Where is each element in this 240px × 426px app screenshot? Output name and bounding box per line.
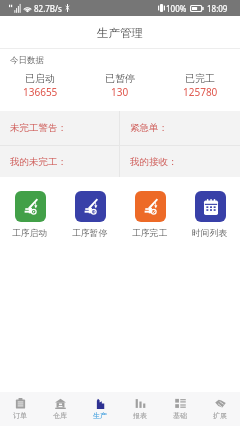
staticText: 扩展 <box>213 411 227 420</box>
staticText: 基础 <box>173 411 187 420</box>
other: 基础 <box>175 398 186 409</box>
button[interactable]: 基础 <box>160 392 200 426</box>
button[interactable]: 我的未完工： <box>0 146 119 177</box>
staticText: 订单 <box>13 411 27 420</box>
button[interactable]: 仓库 <box>40 392 80 426</box>
staticText: 我的未完工： <box>10 156 67 168</box>
staticText: 未完工警告： <box>10 122 67 134</box>
staticText: 我的接收： <box>130 156 178 168</box>
button[interactable]: 工序暂停 <box>60 191 120 239</box>
button[interactable]: 已完工 <box>160 72 240 99</box>
button[interactable]: 工序启动 <box>0 191 60 239</box>
button[interactable]: 已启动 <box>0 72 80 99</box>
staticText: 已完工 <box>185 72 215 85</box>
button[interactable]: 报表 <box>120 392 160 426</box>
staticText: 工序完工 <box>132 228 168 239</box>
staticText: 130 <box>111 85 129 99</box>
staticText: 报表 <box>133 411 147 420</box>
staticText: 已启动 <box>25 72 55 85</box>
button[interactable]: 紧急单： <box>120 111 240 145</box>
other: 扩展 <box>215 398 226 409</box>
staticText: 已暂停 <box>105 72 135 85</box>
staticText: 82.7B/s <box>34 3 62 14</box>
button[interactable]: 工序完工 <box>120 191 180 239</box>
button[interactable]: 扩展 <box>200 392 240 426</box>
staticText: 工序启动 <box>12 228 48 239</box>
button[interactable]: 已暂停 <box>80 72 160 99</box>
staticText: 125780 <box>183 85 218 99</box>
staticText: 100% <box>166 3 187 14</box>
staticText: 生产 <box>93 411 107 420</box>
other: 生产 <box>95 398 106 409</box>
staticText: 生产管理 <box>97 26 143 40</box>
staticText: 紧急单： <box>130 122 168 134</box>
other: 报表 <box>135 398 146 409</box>
staticText: 工序暂停 <box>72 228 108 239</box>
other: 仓库 <box>55 398 66 409</box>
button[interactable]: 未完工警告： <box>0 111 119 145</box>
button[interactable]: 我的接收： <box>120 146 240 177</box>
staticText: 136655 <box>23 85 58 99</box>
staticText: 今日数据 <box>10 55 44 66</box>
other: 订单 <box>15 398 26 409</box>
staticText: 时间列表 <box>192 228 228 239</box>
staticText: 18:09 <box>207 3 228 14</box>
button[interactable]: 时间列表 <box>180 191 240 239</box>
button[interactable]: 生产 <box>80 392 120 426</box>
staticText: 仓库 <box>53 411 67 420</box>
button[interactable]: 订单 <box>0 392 40 426</box>
